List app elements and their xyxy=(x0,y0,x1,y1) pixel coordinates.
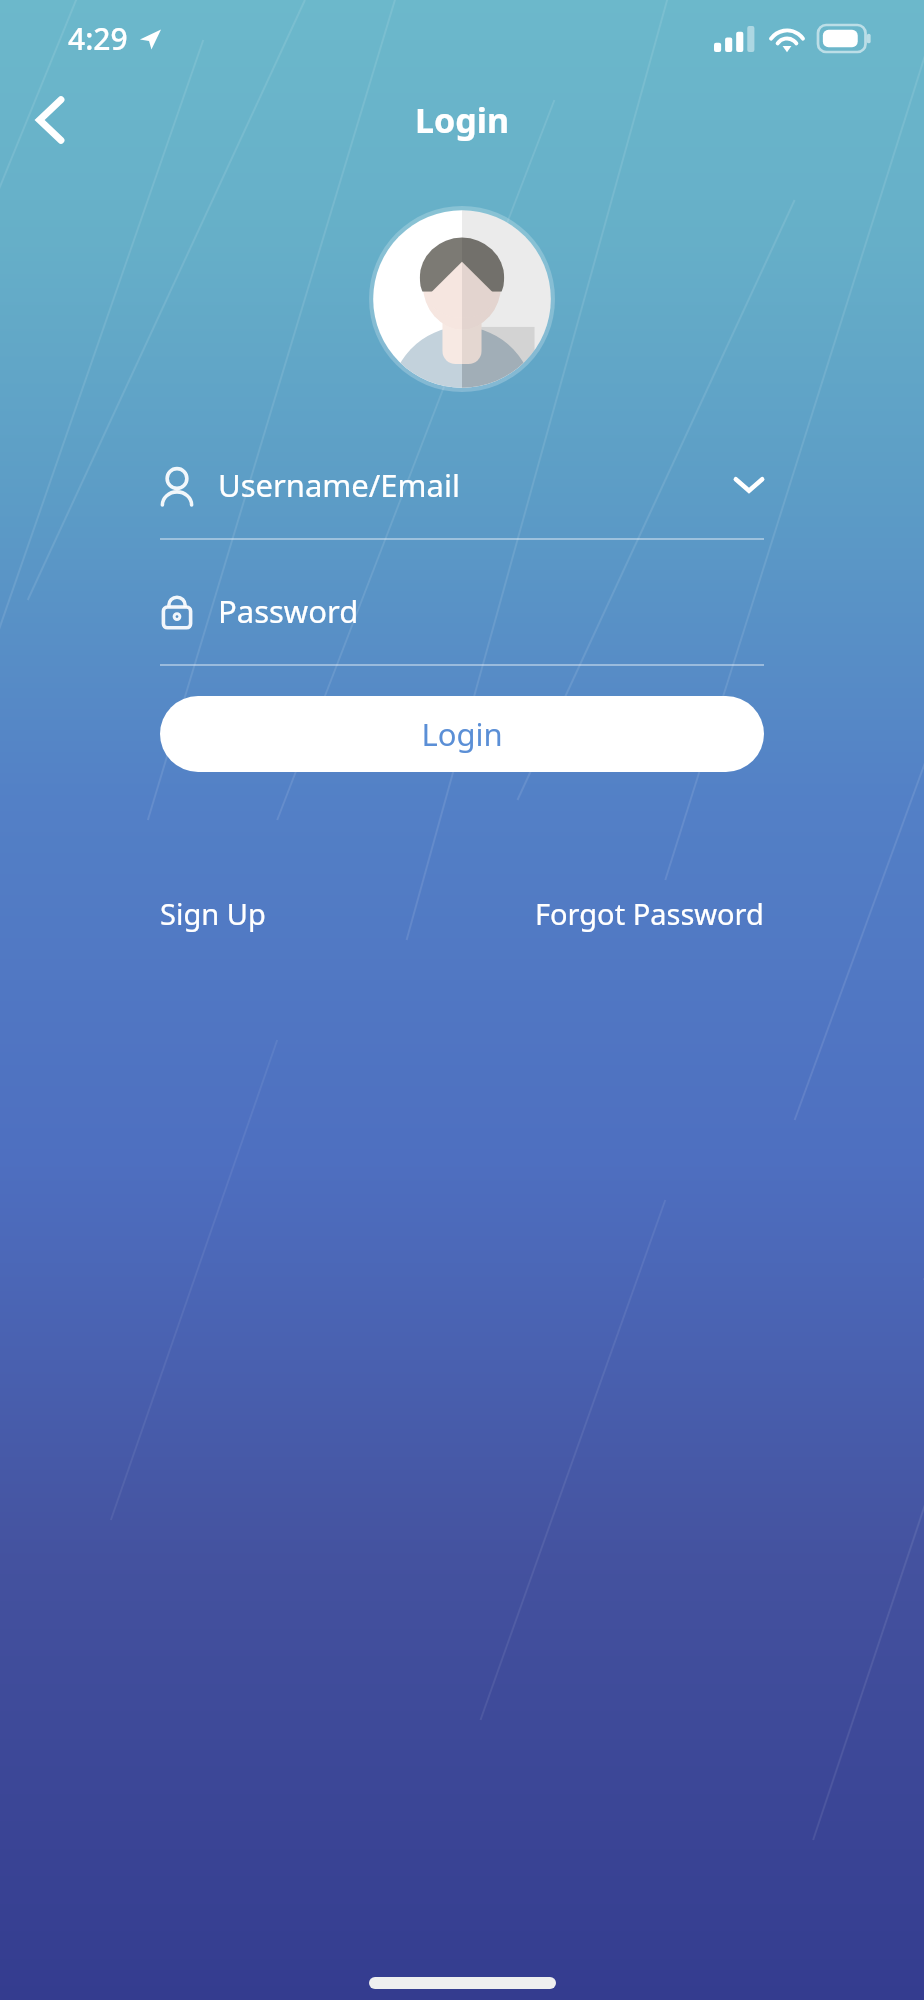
button[interactable]: Sign Up xyxy=(150,884,276,943)
staticText: Login xyxy=(421,713,503,755)
staticText: Password xyxy=(218,590,764,632)
button[interactable]: Back xyxy=(18,88,82,152)
staticText: Username/Email xyxy=(218,464,734,506)
staticText: Login xyxy=(415,97,510,143)
staticText: 4:29 xyxy=(68,18,128,59)
staticText: Forgot Password xyxy=(535,894,764,933)
button[interactable]: Password xyxy=(160,580,764,666)
staticText: Sign Up xyxy=(160,894,266,933)
button[interactable]: Forgot Password xyxy=(525,884,774,943)
button[interactable]: Username/Email xyxy=(160,454,764,540)
button[interactable]: Login xyxy=(160,696,764,772)
